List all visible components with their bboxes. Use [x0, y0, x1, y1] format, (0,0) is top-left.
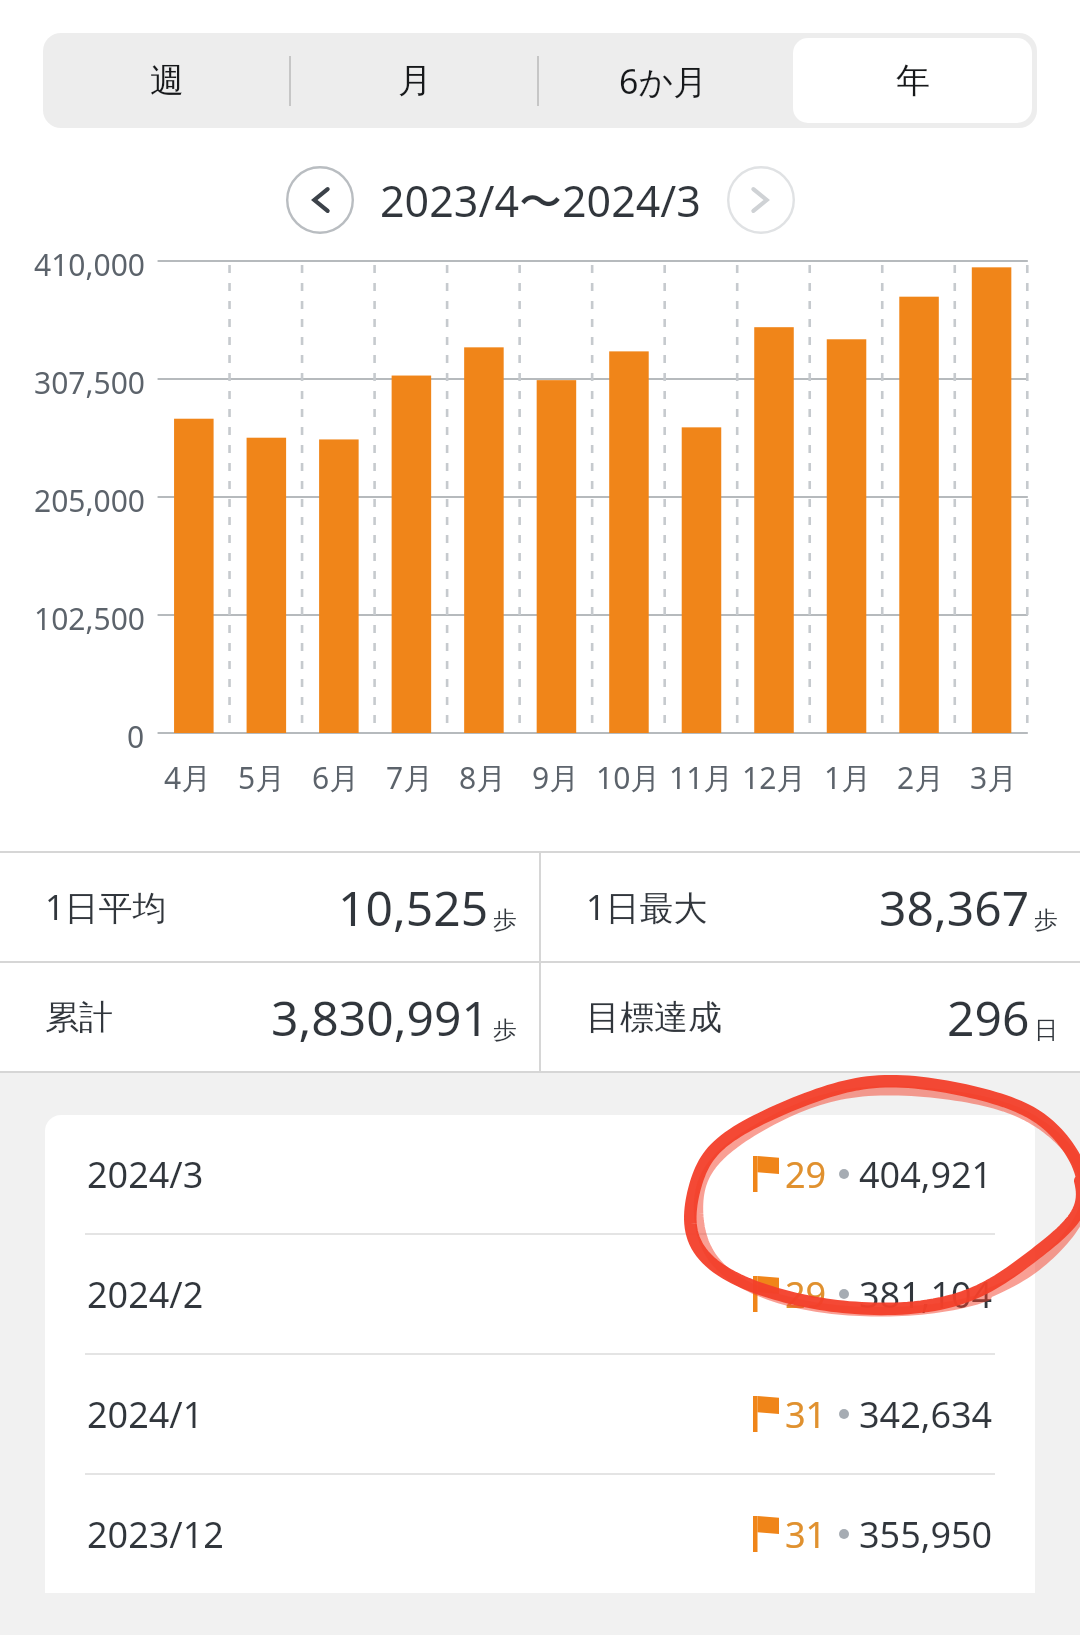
staticText: 1月: [824, 757, 872, 798]
staticText: 29: [785, 1150, 827, 1199]
staticText: 0: [127, 716, 145, 757]
staticText: 307,500: [34, 362, 145, 403]
staticText: 29: [785, 1270, 827, 1319]
staticText: 31: [785, 1510, 827, 1559]
staticText: 404,921: [859, 1150, 993, 1199]
staticText: 342,634: [859, 1390, 993, 1439]
button[interactable]: 週: [43, 33, 291, 128]
staticText: 410,000: [34, 244, 145, 285]
button[interactable]: 2024/2: [45, 1235, 1035, 1353]
staticText: 月: [398, 59, 432, 102]
staticText: 2024/2: [87, 1270, 204, 1319]
staticText: 2月: [897, 757, 945, 798]
staticText: 歩: [493, 905, 517, 935]
staticText: 2023/12: [87, 1510, 224, 1559]
staticText: 4月: [164, 757, 212, 798]
staticText: 週: [150, 59, 184, 102]
staticText: 3,830,991: [271, 985, 489, 1050]
staticText: 12月: [742, 757, 807, 798]
staticText: 355,950: [859, 1510, 993, 1559]
staticText: 296: [947, 985, 1030, 1050]
staticText: 6か月: [619, 58, 708, 104]
staticText: 9月: [532, 757, 580, 798]
staticText: 1日平均: [45, 884, 167, 930]
staticText: 2024/1: [87, 1390, 204, 1439]
button[interactable]: 2024/1: [45, 1355, 1035, 1473]
staticText: 2024/3: [87, 1150, 204, 1199]
staticText: 10,525: [338, 875, 489, 940]
staticText: 1日最大: [586, 884, 708, 930]
button[interactable]: 1日最大: [541, 853, 1080, 961]
button[interactable]: 累計: [0, 963, 539, 1071]
staticText: 累計: [45, 996, 113, 1039]
staticText: 歩: [1034, 905, 1058, 935]
button[interactable]: Next period: [727, 166, 795, 234]
button[interactable]: 年: [788, 33, 1037, 128]
staticText: 102,500: [34, 598, 145, 639]
button[interactable]: 1日平均: [0, 853, 539, 961]
staticText: 7月: [386, 757, 434, 798]
staticText: 目標達成: [586, 996, 722, 1039]
staticText: 年: [896, 59, 930, 102]
staticText: 2023/4〜2024/3: [380, 171, 701, 230]
staticText: 31: [785, 1390, 827, 1439]
button[interactable]: 2024/3: [45, 1115, 1035, 1233]
staticText: 11月: [669, 757, 734, 798]
staticText: 8月: [459, 757, 507, 798]
button[interactable]: 目標達成: [541, 963, 1080, 1071]
staticText: 日: [1034, 1015, 1058, 1045]
staticText: 205,000: [34, 480, 145, 521]
staticText: 5月: [238, 757, 286, 798]
staticText: 歩: [493, 1015, 517, 1045]
button[interactable]: 6か月: [539, 33, 788, 128]
button[interactable]: Previous period: [286, 166, 354, 234]
staticText: 6月: [312, 757, 360, 798]
staticText: 3月: [970, 757, 1018, 798]
button[interactable]: 月: [291, 33, 539, 128]
staticText: 38,367: [879, 875, 1030, 940]
staticText: 10月: [596, 757, 661, 798]
button[interactable]: 2023/12: [45, 1475, 1035, 1593]
staticText: 381,104: [859, 1270, 993, 1319]
